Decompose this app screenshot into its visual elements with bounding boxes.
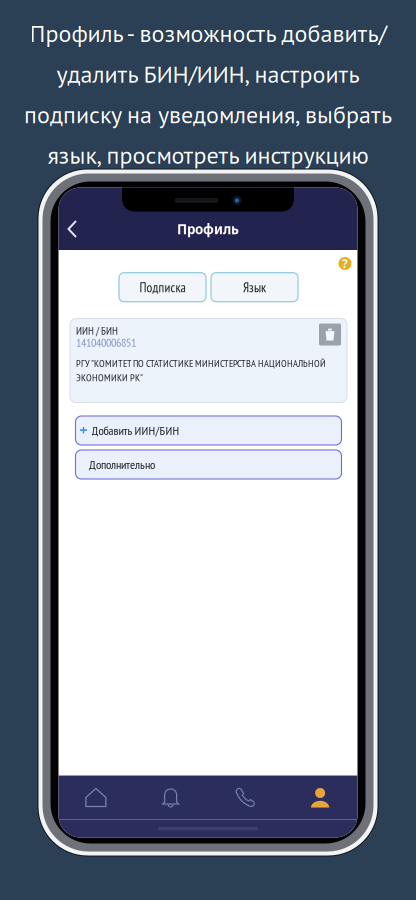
button[interactable]: Дополнительно — [75, 450, 341, 479]
button[interactable]: Notifications — [133, 775, 208, 819]
staticText: Профиль - возможность добавить/ — [29, 18, 386, 49]
staticText: язык, просмотреть инструкцию — [47, 139, 368, 170]
staticText: Профиль — [177, 220, 239, 238]
staticText: удалить БИН/ИИН, настроить — [56, 58, 359, 89]
button[interactable]: Profile — [283, 775, 358, 819]
staticText: Добавить ИИН/БИН — [91, 422, 179, 438]
button[interactable]: Подписка — [119, 273, 206, 302]
button[interactable]: Help — [334, 253, 355, 274]
button[interactable]: Добавить ИИН/БИН — [75, 416, 341, 445]
staticText: подписку на уведомления, выбрать — [24, 99, 392, 130]
button[interactable]: Back — [57, 213, 87, 245]
staticText: РГУ "КОМИТЕТ ПО СТАТИСТИКЕ МИНИСТЕРСТВА … — [76, 356, 326, 384]
staticText: Дополнительно — [89, 456, 155, 472]
staticText: ИИН / БИН — [76, 323, 118, 338]
staticText: Подписка — [139, 279, 185, 296]
button[interactable]: Calls — [208, 775, 283, 819]
button[interactable]: Delete — [319, 323, 341, 345]
staticText: ? — [342, 255, 348, 272]
staticText: 141040006851 — [76, 334, 136, 350]
staticText: Язык — [243, 279, 266, 296]
button[interactable]: Язык — [211, 273, 298, 302]
button[interactable]: Home — [58, 775, 133, 819]
